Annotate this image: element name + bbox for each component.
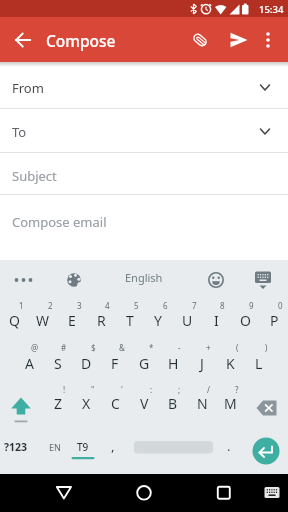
staticText: " xyxy=(91,384,95,395)
staticText: 8 xyxy=(220,300,225,311)
staticText: @ xyxy=(31,342,39,353)
button[interactable]: . xyxy=(221,435,237,457)
staticText: R xyxy=(97,311,106,330)
button[interactable] xyxy=(0,195,288,260)
staticText: ?123 xyxy=(4,440,28,454)
button[interactable] xyxy=(224,26,252,54)
staticText: P xyxy=(270,311,279,330)
staticText: . xyxy=(227,437,231,455)
staticText: 1 xyxy=(19,300,24,311)
button[interactable]: T xyxy=(116,309,144,331)
staticText: X xyxy=(82,394,91,413)
staticText: N xyxy=(197,394,208,413)
button[interactable]: T9 xyxy=(72,436,94,458)
button[interactable]: J xyxy=(188,352,216,374)
button[interactable] xyxy=(0,109,288,152)
staticText: 5 xyxy=(134,300,139,311)
button[interactable]: B xyxy=(159,392,187,414)
button[interactable]: , xyxy=(105,435,121,457)
staticText: W xyxy=(36,311,50,330)
button[interactable]: F xyxy=(101,352,129,374)
staticText: ) xyxy=(265,342,268,353)
button[interactable] xyxy=(258,480,286,506)
staticText: F xyxy=(111,354,119,373)
button[interactable]: C xyxy=(101,392,129,414)
staticText: ' xyxy=(121,384,123,395)
button[interactable] xyxy=(8,26,36,54)
staticText: A xyxy=(25,354,34,373)
staticText: G xyxy=(139,354,150,373)
staticText: English xyxy=(125,270,163,285)
button[interactable] xyxy=(0,64,288,108)
staticText: To xyxy=(12,123,27,141)
button[interactable]: D xyxy=(72,352,100,374)
button[interactable]: O xyxy=(231,309,259,331)
staticText: U xyxy=(182,311,193,330)
button[interactable]: Y xyxy=(144,309,172,331)
staticText: 2 xyxy=(48,300,53,311)
button[interactable]: English xyxy=(114,266,174,288)
button[interactable] xyxy=(48,478,80,508)
button[interactable]: V xyxy=(130,392,158,414)
button[interactable] xyxy=(0,153,288,194)
staticText: From xyxy=(12,79,44,97)
button[interactable]: Z xyxy=(44,392,72,414)
button[interactable] xyxy=(134,441,213,454)
button[interactable]: U xyxy=(173,309,201,331)
button[interactable]: L xyxy=(245,352,273,374)
staticText: Compose email xyxy=(12,213,107,231)
staticText: D xyxy=(81,354,92,373)
staticText: Z xyxy=(54,394,63,413)
staticText: ( xyxy=(236,342,239,353)
button[interactable]: Q xyxy=(0,309,28,331)
button[interactable] xyxy=(252,437,280,465)
staticText: O xyxy=(240,311,251,330)
button[interactable]: ?123 xyxy=(0,436,33,458)
staticText: I xyxy=(214,311,219,330)
staticText: ! xyxy=(63,384,66,395)
button[interactable]: G xyxy=(130,352,158,374)
staticText: ? xyxy=(235,384,239,395)
button[interactable]: M xyxy=(216,392,244,414)
staticText: S xyxy=(54,354,62,373)
button[interactable]: E xyxy=(58,309,86,331)
button[interactable] xyxy=(186,26,214,54)
button[interactable]: A xyxy=(15,352,43,374)
button[interactable]: R xyxy=(87,309,115,331)
button[interactable]: S xyxy=(44,352,72,374)
staticText: ; xyxy=(178,384,181,395)
button[interactable] xyxy=(256,26,280,54)
staticText: T xyxy=(126,311,134,330)
button[interactable] xyxy=(208,478,240,508)
staticText: V xyxy=(140,394,149,413)
staticText: E xyxy=(68,311,76,330)
staticText: T9 xyxy=(77,440,89,454)
button[interactable]: EN xyxy=(45,436,65,458)
staticText: 9 xyxy=(249,300,254,311)
staticText: K xyxy=(226,354,235,373)
button[interactable]: I xyxy=(202,309,230,331)
button[interactable]: K xyxy=(216,352,244,374)
button[interactable]: H xyxy=(159,352,187,374)
staticText: + xyxy=(206,342,211,353)
staticText: Subject xyxy=(12,167,57,185)
staticText: C xyxy=(111,394,120,413)
staticText: EN xyxy=(49,441,61,453)
button[interactable] xyxy=(250,392,284,422)
button[interactable] xyxy=(4,392,40,422)
button[interactable]: W xyxy=(29,309,57,331)
staticText: , xyxy=(111,437,115,455)
staticText: 3 xyxy=(77,300,82,311)
staticText: 4 xyxy=(105,300,110,311)
staticText: Y xyxy=(154,311,162,330)
staticText: Compose xyxy=(46,30,116,51)
button[interactable]: N xyxy=(188,392,216,414)
staticText: & xyxy=(119,342,125,353)
button[interactable]: P xyxy=(260,309,288,331)
staticText: 0 xyxy=(278,300,283,311)
button[interactable]: X xyxy=(72,392,100,414)
button[interactable] xyxy=(128,478,160,508)
staticText: - xyxy=(178,342,181,353)
staticText: 6 xyxy=(163,300,168,311)
staticText: * xyxy=(149,342,154,353)
